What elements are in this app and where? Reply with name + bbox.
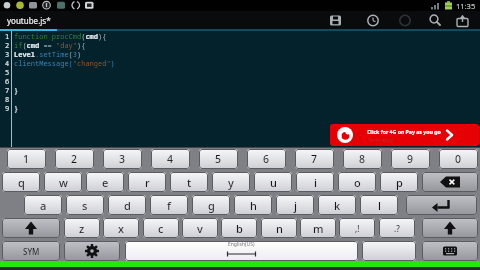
button[interactable]: w [44,172,82,192]
button[interactable]: 5 [199,149,238,169]
staticText: 0 [455,152,462,166]
button[interactable]: 1 [7,149,46,169]
button[interactable]: l [360,195,398,215]
staticText: a [40,198,47,213]
staticText: if(cmd == "day"){ [14,41,86,51]
staticText: English(US) [228,241,255,248]
button[interactable]: 6 [247,149,286,169]
staticText: c [158,221,164,236]
button[interactable]: f [150,195,188,215]
button[interactable] [64,241,120,261]
staticText: } [14,104,19,114]
button[interactable] [406,195,477,215]
staticText: 1 [5,32,10,42]
button[interactable] [422,241,478,261]
staticText: m [313,221,324,236]
button[interactable]: v [182,218,218,238]
button[interactable]: b [221,218,257,238]
staticText: 2 [71,152,78,166]
button[interactable]: SYM [2,241,60,261]
staticText: 7 [311,152,318,166]
staticText: 3 [5,50,10,60]
staticText: 8 [5,95,10,105]
button[interactable]: 9 [391,149,430,169]
staticText: Level.setTime(3) [14,50,82,60]
staticText: b [236,221,243,236]
button[interactable]: n [261,218,297,238]
staticText: 5 [215,152,222,166]
staticText: 1 [23,152,30,166]
button[interactable] [362,241,416,261]
button[interactable]: c [143,218,179,238]
staticText: 9 [407,152,414,166]
staticText: z [79,221,85,236]
staticText: l [378,198,381,213]
button[interactable]: ,! [339,218,375,238]
button[interactable]: k [318,195,356,215]
button[interactable]: Click for 4G on Pay as you go [330,124,479,146]
staticText: f [167,198,171,213]
button[interactable]: 2 [55,149,94,169]
button[interactable]: o [338,172,376,192]
button[interactable]: g [192,195,230,215]
button[interactable]: .? [379,218,415,238]
button[interactable]: i [296,172,334,192]
button[interactable] [425,11,451,29]
button[interactable]: 0 [439,149,478,169]
staticText: y [228,175,234,190]
button[interactable]: x [103,218,139,238]
staticText: } [14,86,19,96]
button[interactable]: 7 [295,149,334,169]
staticText: 5 [5,68,10,78]
button[interactable]: q [2,172,40,192]
staticText: j [294,198,297,213]
button[interactable] [422,172,478,192]
button[interactable]: English(US) [125,241,358,261]
button[interactable]: z [64,218,100,238]
button[interactable] [453,11,479,29]
staticText: 11:35 [456,1,476,11]
button[interactable] [422,218,478,238]
staticText: ,! [355,223,360,234]
staticText: i [314,175,317,190]
staticText: t [187,175,192,190]
staticText: g [208,198,215,213]
button[interactable]: 3 [103,149,142,169]
staticText: n [276,221,283,236]
staticText: 6 [263,152,270,166]
button[interactable]: 8 [343,149,382,169]
staticText: u [270,175,277,190]
button[interactable]: 4 [151,149,190,169]
button[interactable]: p [380,172,418,192]
staticText: k [334,198,341,213]
staticText: 7 [5,86,10,96]
button[interactable]: r [128,172,166,192]
button[interactable]: e [86,172,124,192]
staticText: function procCmd(cmd){ [14,32,107,42]
staticText: clientMessage("changed") [14,59,115,69]
button[interactable] [2,218,60,238]
staticText: 8 [359,152,366,166]
button[interactable]: d [108,195,146,215]
staticText: q [18,175,25,190]
button[interactable]: j [276,195,314,215]
button[interactable]: h [234,195,272,215]
button[interactable] [361,11,387,29]
staticText: v [197,221,203,236]
staticText: 9 [5,104,10,114]
staticText: 2 [5,41,10,51]
staticText: e [102,175,109,190]
button[interactable]: a [24,195,62,215]
button[interactable]: t [170,172,208,192]
button[interactable]: u [254,172,292,192]
button[interactable] [328,11,354,29]
staticText: youtube.js* [7,15,51,26]
staticText: s [82,198,88,213]
staticText: r [145,175,150,190]
button[interactable] [393,11,419,29]
button[interactable]: m [300,218,336,238]
staticText: d [124,198,131,213]
button[interactable]: s [66,195,104,215]
button[interactable]: y [212,172,250,192]
staticText: Terms apply [368,137,394,143]
